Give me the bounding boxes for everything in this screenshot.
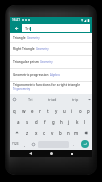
staticText: Geometry (36, 47, 49, 51)
button[interactable]: h (57, 116, 65, 127)
staticText: Geometry (27, 36, 40, 40)
button[interactable]: Right Triangle (10, 43, 92, 55)
button[interactable]: Backspace (80, 127, 92, 138)
staticText: z (26, 130, 29, 136)
staticText: , (24, 142, 26, 147)
staticText: Right Triangle (13, 47, 35, 51)
button[interactable]: Trigonometric functions for a right tria… (10, 82, 92, 94)
button[interactable]: ?123 (10, 138, 21, 150)
button[interactable]: triad (41, 94, 64, 105)
button[interactable]: j (65, 116, 73, 127)
button[interactable]: g (49, 116, 57, 127)
button[interactable]: More suggestions (87, 94, 92, 105)
staticText: n (67, 130, 70, 136)
staticText: u (63, 108, 66, 114)
staticText: Tri (25, 26, 30, 31)
button[interactable]: s (23, 116, 32, 127)
staticText: Trigonometry (13, 87, 31, 91)
button[interactable]: n (64, 127, 72, 138)
button[interactable]: a (14, 116, 23, 127)
button[interactable]: t (44, 105, 52, 116)
button[interactable]: p (84, 105, 92, 116)
staticText: r (39, 108, 41, 114)
staticText: Trigonometric functions for a right tria… (13, 83, 81, 87)
button[interactable]: e (28, 105, 36, 116)
button[interactable]: d (32, 116, 41, 127)
staticText: c (43, 130, 46, 136)
button[interactable]: Home (46, 150, 56, 157)
staticText: k (76, 119, 79, 125)
staticText: Algebra (50, 73, 60, 77)
button[interactable]: Back (25, 150, 35, 157)
button[interactable]: Tri (22, 24, 90, 32)
staticText: g (52, 119, 55, 125)
button[interactable]: Recents (67, 150, 77, 157)
button[interactable]: l (81, 116, 89, 127)
button[interactable]: z (23, 127, 32, 138)
staticText: Geometric progression (13, 73, 49, 77)
staticText: ?123 (12, 142, 19, 146)
staticText: x (35, 130, 38, 136)
button[interactable]: Back (10, 23, 22, 33)
button[interactable]: Shift (10, 127, 23, 138)
staticText: triad (48, 97, 57, 102)
button[interactable]: w (19, 105, 28, 116)
button[interactable]: i (68, 105, 76, 116)
staticText: j (68, 119, 70, 125)
staticText: i (71, 108, 73, 114)
button[interactable]: o (76, 105, 84, 116)
staticText: w (22, 108, 26, 114)
staticText: Triangle (13, 36, 26, 40)
button[interactable]: Settings (10, 94, 19, 105)
button[interactable]: c (40, 127, 48, 138)
staticText: q (13, 108, 16, 114)
staticText: Tri (28, 97, 33, 102)
button[interactable]: Emoji (29, 138, 37, 150)
staticText: 16:21 (12, 18, 21, 22)
staticText: s (26, 119, 29, 125)
button[interactable]: y (52, 105, 60, 116)
staticText: d (35, 119, 38, 125)
button[interactable]: q (10, 105, 19, 116)
button[interactable]: v (48, 127, 56, 138)
staticText: h (60, 119, 63, 125)
button[interactable]: u (60, 105, 68, 116)
button[interactable]: Tri (19, 94, 41, 105)
button[interactable]: f (41, 116, 49, 127)
staticText: p (87, 108, 90, 114)
staticText: . (73, 142, 75, 147)
staticText: Triangular prism (13, 60, 39, 64)
staticText: t (47, 108, 49, 114)
button[interactable]: b (56, 127, 64, 138)
button[interactable]: Enter (81, 140, 89, 148)
button[interactable]: Triangle (10, 33, 92, 42)
button[interactable]: r (36, 105, 44, 116)
button[interactable]: Triangular prism (10, 56, 92, 68)
button[interactable]: Geometric progression (10, 69, 92, 81)
staticText: l (84, 119, 86, 125)
staticText: b (59, 130, 62, 136)
button[interactable]: trip (64, 94, 87, 105)
staticText: a (17, 119, 20, 125)
button[interactable]: x (32, 127, 40, 138)
button[interactable]: . (70, 138, 78, 150)
button[interactable]: , (21, 138, 29, 150)
staticText: f (44, 119, 46, 125)
button[interactable]: m (72, 127, 80, 138)
staticText: m (74, 130, 79, 136)
staticText: e (31, 108, 34, 114)
button[interactable]: k (73, 116, 81, 127)
staticText: v (51, 130, 54, 136)
staticText: y (55, 108, 58, 114)
staticText: trip (72, 97, 79, 102)
staticText: o (79, 108, 82, 114)
staticText: Geometry (40, 60, 53, 64)
